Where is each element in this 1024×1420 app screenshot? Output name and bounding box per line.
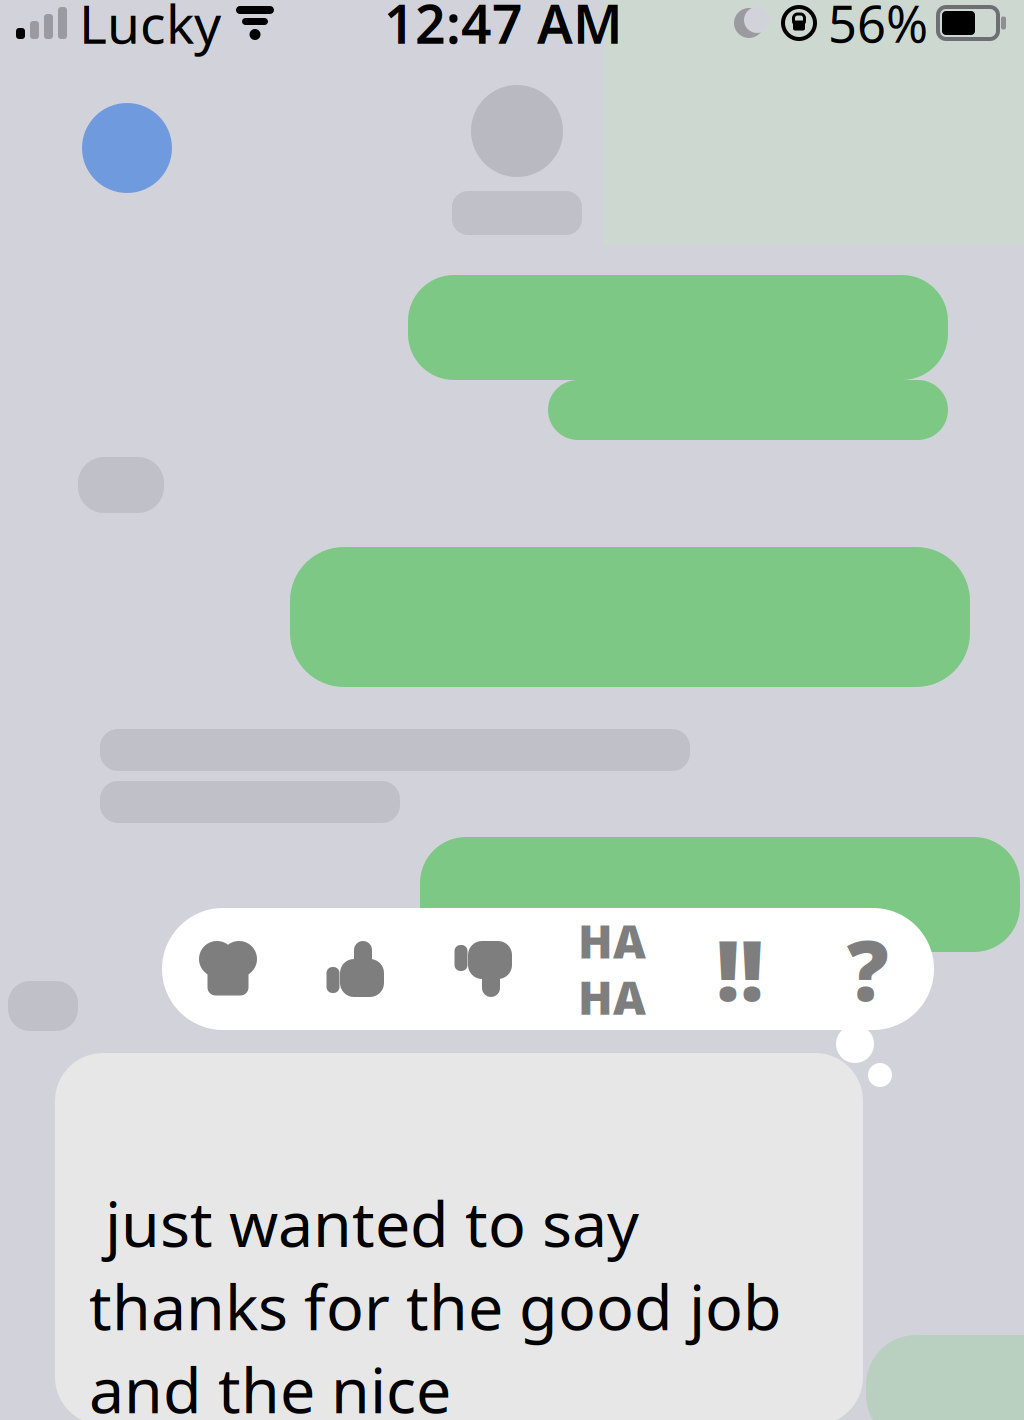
button[interactable]: Dislike xyxy=(420,908,548,1030)
staticText: !! xyxy=(716,914,764,1024)
staticText: just wanted to say thanks for the good j… xyxy=(89,1181,782,1420)
staticText: HA xyxy=(578,911,646,971)
staticText: HA xyxy=(578,967,646,1027)
staticText: 12:47 AM xyxy=(384,0,623,58)
button[interactable]: Like xyxy=(292,908,420,1030)
button[interactable]: Question xyxy=(804,908,932,1030)
button[interactable]: Haha xyxy=(548,908,676,1030)
button[interactable]: just wanted to say thanks for the good j… xyxy=(55,1053,863,1420)
staticText: 56% xyxy=(828,0,928,57)
button[interactable]: Back xyxy=(0,0,182,193)
button[interactable]: Heart xyxy=(164,908,292,1030)
button[interactable]: Emphasize xyxy=(676,908,804,1030)
staticText: ? xyxy=(847,914,889,1024)
staticText: Lucky xyxy=(79,0,221,58)
